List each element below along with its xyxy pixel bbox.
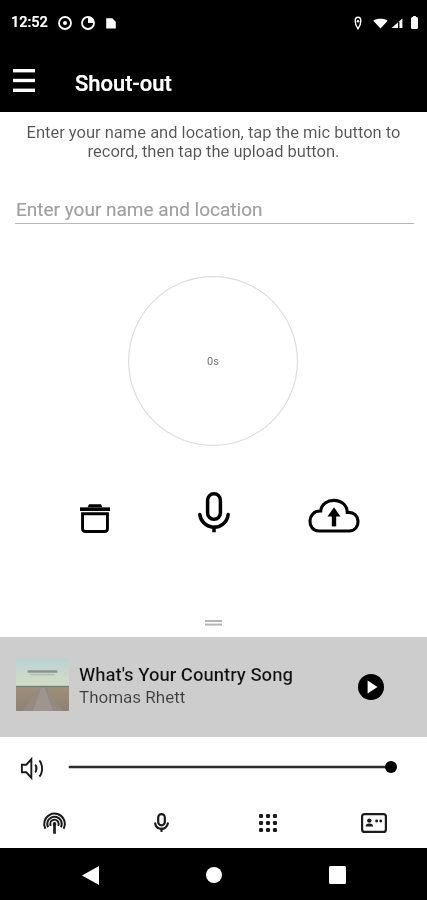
button[interactable]: Volume slider: [62, 755, 398, 779]
button[interactable]: Volume: [10, 746, 54, 790]
button[interactable]: Recent apps: [311, 849, 363, 900]
button[interactable]: Play: [349, 665, 393, 709]
button[interactable]: Recording timer: [128, 276, 298, 446]
button[interactable]: Apps: [240, 795, 296, 851]
button[interactable]: Delete: [64, 483, 126, 545]
button[interactable]: Enter your name and location: [0, 192, 427, 226]
staticText: Enter your name and location: [16, 198, 263, 220]
staticText: What's Your Country Song: [79, 664, 293, 686]
staticText: Shout-out: [75, 71, 172, 97]
staticText: Thomas Rhett: [79, 687, 186, 707]
button[interactable]: Contacts: [346, 795, 402, 851]
button[interactable]: Record: [183, 482, 245, 544]
button[interactable]: Upload: [303, 483, 365, 545]
button[interactable]: Home: [188, 849, 240, 900]
staticText: Enter your name and location, tap the mi…: [14, 123, 413, 161]
staticText: 12:52: [11, 14, 48, 31]
button[interactable]: Microphone: [133, 795, 189, 851]
button[interactable]: Cast: [26, 795, 82, 851]
button[interactable]: Back: [64, 849, 116, 900]
staticText: 0s: [207, 355, 219, 368]
button[interactable]: Menu: [2, 58, 46, 102]
